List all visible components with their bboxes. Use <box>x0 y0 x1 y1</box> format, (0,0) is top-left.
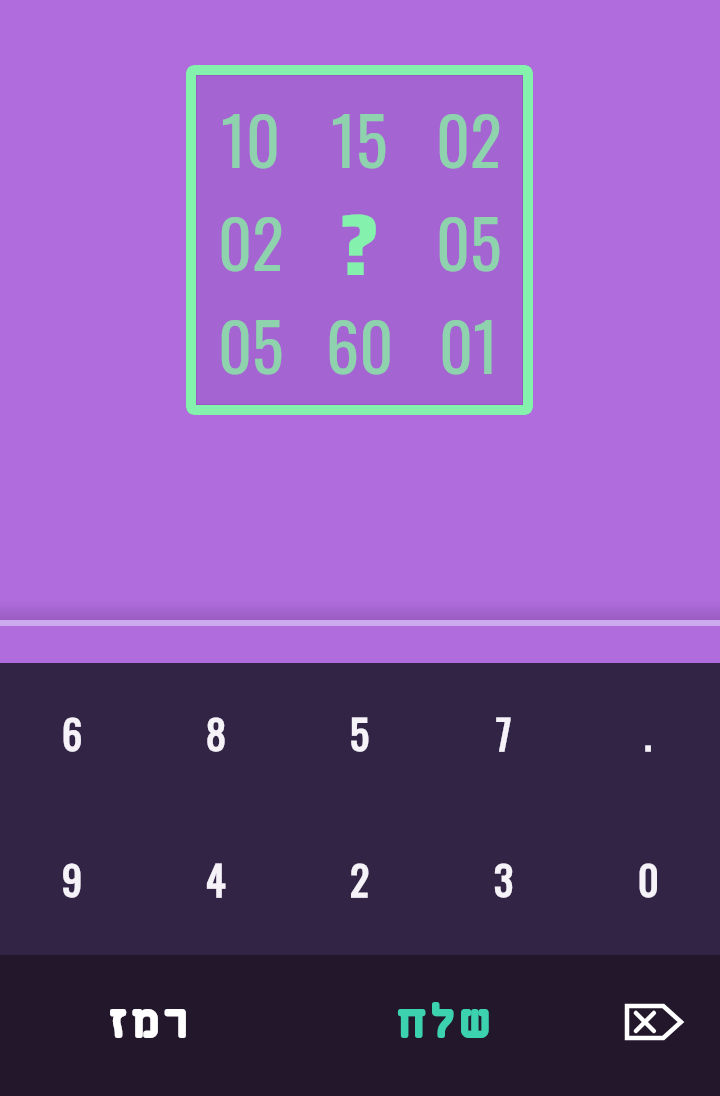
button[interactable]: 6 <box>0 663 144 809</box>
staticText: 5 <box>350 703 370 762</box>
button[interactable]: 7 <box>432 663 576 809</box>
staticText: 3 <box>494 849 514 908</box>
staticText: 10 <box>221 89 281 187</box>
staticText: 7 <box>496 703 512 762</box>
staticText: 6 <box>62 703 83 762</box>
staticText: 2 <box>350 849 370 908</box>
button[interactable]: . <box>576 663 720 809</box>
button[interactable] <box>590 989 718 1055</box>
staticText: 02 <box>218 192 284 290</box>
button[interactable]: 3 <box>432 809 576 955</box>
button[interactable]: רמז <box>52 989 252 1055</box>
staticText: ? <box>339 177 380 280</box>
button[interactable]: 0 <box>576 809 720 955</box>
staticText: 05 <box>436 192 502 290</box>
staticText: . <box>644 703 652 762</box>
staticText: 0 <box>638 849 659 908</box>
staticText: 9 <box>62 849 83 908</box>
button[interactable]: 9 <box>0 809 144 955</box>
staticText: שלח <box>398 993 497 1051</box>
staticText: 60 <box>326 295 394 393</box>
button[interactable]: 5 <box>288 663 432 809</box>
button[interactable]: 8 <box>144 663 288 809</box>
button[interactable]: שלח <box>347 989 547 1055</box>
staticText: 8 <box>206 703 226 762</box>
staticText: רמז <box>110 993 194 1051</box>
staticText: 01 <box>439 295 499 393</box>
staticText: 05 <box>218 295 284 393</box>
staticText: שלח <box>398 993 497 1051</box>
staticText: 15 <box>331 89 388 187</box>
staticText: רמז <box>110 993 194 1051</box>
button[interactable]: 4 <box>144 809 288 955</box>
staticText: 02 <box>436 89 502 187</box>
button[interactable]: 2 <box>288 809 432 955</box>
staticText: 4 <box>206 849 226 908</box>
